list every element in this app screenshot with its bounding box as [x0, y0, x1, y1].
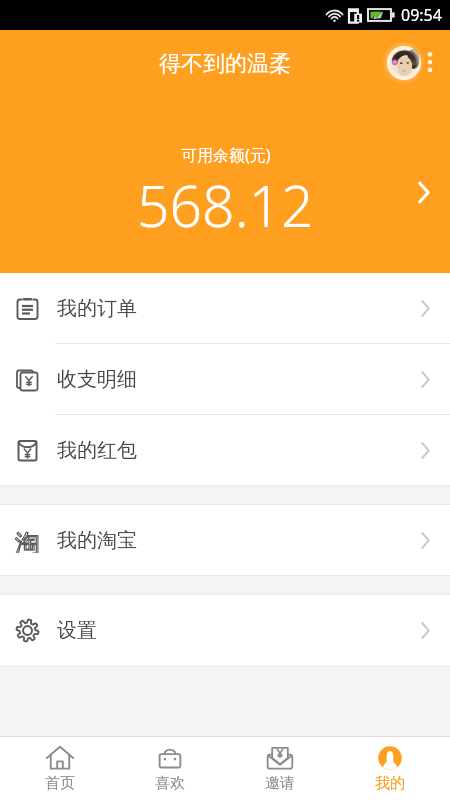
staticText: 淘 — [15, 528, 40, 553]
staticText: 首页 — [45, 774, 75, 793]
button[interactable]: Balance details — [411, 179, 437, 205]
button[interactable]: 喜欢 — [115, 737, 225, 800]
button[interactable]: 淘 — [0, 505, 450, 575]
button[interactable]: More options — [419, 51, 441, 73]
staticText: 568.12 — [137, 166, 314, 244]
button[interactable]: 收支明细 — [0, 344, 450, 414]
button[interactable]: 我的 — [335, 737, 445, 800]
staticText: 得不到的温柔 — [159, 50, 291, 78]
button[interactable]: 我的订单 — [0, 273, 450, 343]
staticText: 我的 — [375, 774, 405, 793]
staticText: 我的红包 — [57, 438, 137, 463]
button[interactable]: Profile avatar — [382, 41, 425, 84]
staticText: 收支明细 — [57, 367, 137, 392]
button[interactable]: 我的红包 — [0, 415, 450, 485]
staticText: 可用余额(元) — [181, 144, 271, 166]
button[interactable]: 首页 — [5, 737, 115, 800]
staticText: 设置 — [57, 618, 97, 643]
staticText: 我的订单 — [57, 296, 137, 321]
staticText: 邀请 — [265, 774, 295, 793]
staticText: 09:54 — [401, 4, 442, 26]
button[interactable]: 邀请 — [225, 737, 335, 800]
button[interactable]: 设置 — [0, 595, 450, 665]
staticText: 我的淘宝 — [57, 528, 137, 553]
staticText: 喜欢 — [155, 774, 185, 793]
